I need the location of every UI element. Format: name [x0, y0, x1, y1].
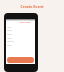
button[interactable]: [7, 57, 34, 63]
button[interactable]: Time: [7, 37, 36, 40]
staticText: New event: [19, 20, 31, 23]
button[interactable]: Note: [7, 44, 36, 47]
button[interactable]: Title: [7, 26, 36, 29]
staticText: Date: [7, 33, 12, 36]
staticText: Title: [7, 26, 12, 29]
button[interactable]: Guests: [7, 40, 36, 43]
staticText: Guests: [7, 40, 14, 43]
button[interactable]: Date: [7, 33, 36, 36]
button[interactable]: Place: [7, 29, 36, 32]
staticText: Create Event: [0, 4, 64, 9]
staticText: Time: [7, 37, 12, 40]
staticText: Note: [7, 44, 12, 47]
staticText: Place: [7, 29, 13, 32]
